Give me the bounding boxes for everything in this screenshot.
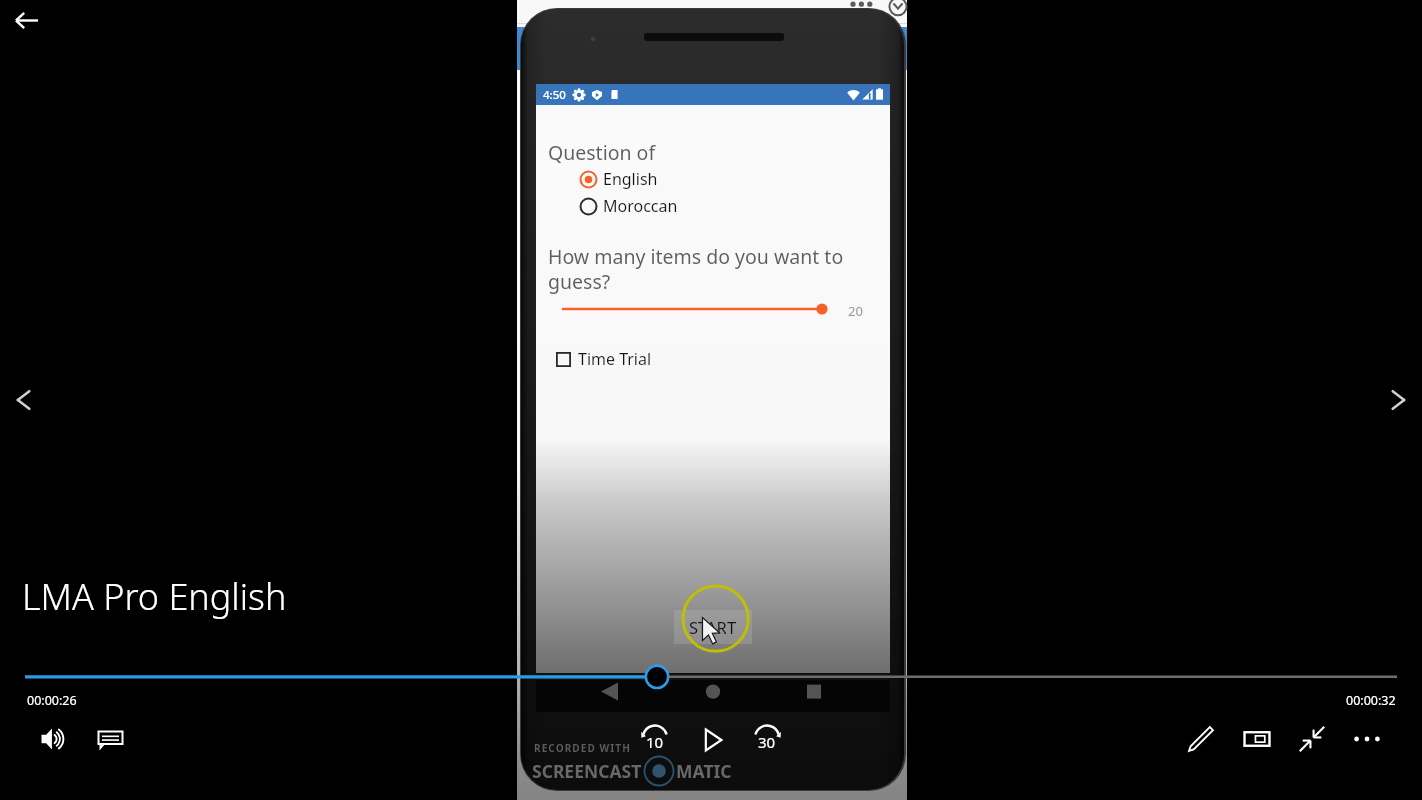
button[interactable]: Edit <box>1181 719 1221 759</box>
staticText: MATIC <box>676 759 732 783</box>
staticText: LMA Pro English <box>22 572 287 621</box>
button[interactable]: Back <box>6 0 46 40</box>
staticText: Question of <box>548 139 656 166</box>
button[interactable]: Captions <box>90 719 130 759</box>
staticText: START <box>689 616 737 638</box>
button[interactable]: Rewind 10 seconds <box>635 719 675 759</box>
button[interactable]: Seek bar <box>18 664 1404 689</box>
staticText: 30 <box>758 732 776 752</box>
staticText: 00:00:32 <box>1346 692 1396 709</box>
staticText: 00:00:26 <box>27 692 77 709</box>
button[interactable]: Time Trial <box>556 347 652 371</box>
button[interactable]: Next video <box>1374 376 1422 424</box>
staticText: How many items do you want to guess? <box>548 243 844 294</box>
staticText: English <box>603 168 658 190</box>
staticText: Moroccan <box>603 195 678 217</box>
button[interactable]: Play <box>692 720 732 760</box>
button[interactable]: English <box>580 168 658 190</box>
staticText: 20 <box>848 302 863 320</box>
button[interactable]: START <box>674 610 752 644</box>
staticText: Time Trial <box>578 348 652 370</box>
button[interactable]: Picture in picture <box>1237 719 1277 759</box>
button[interactable]: Previous video <box>0 376 48 424</box>
button[interactable]: More options <box>1347 719 1387 759</box>
staticText: RECORDED WITH <box>534 741 631 755</box>
button[interactable]: Exit fullscreen <box>1292 719 1332 759</box>
button[interactable]: Moroccan <box>580 195 678 217</box>
staticText: 4:50 <box>543 87 566 103</box>
staticText: SCREENCAST <box>532 759 642 783</box>
button[interactable]: Volume <box>34 719 74 759</box>
staticText: 10 <box>646 732 664 752</box>
button[interactable]: Forward 30 seconds <box>747 719 787 759</box>
